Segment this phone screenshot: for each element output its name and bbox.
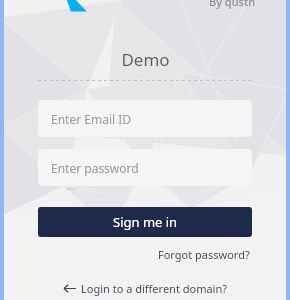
staticText: Enter password [51, 160, 139, 176]
button[interactable]: Sign me in [38, 207, 252, 237]
staticText: Demo [121, 48, 170, 71]
staticText: Enter Email ID [51, 111, 132, 127]
staticText: Sign me in [113, 213, 178, 231]
other: Back [63, 284, 76, 293]
staticText: By qustn [209, 0, 256, 9]
button[interactable]: Forgot password? [156, 245, 252, 264]
button[interactable]: Back [59, 278, 232, 299]
staticText: Login to a different domain? [81, 281, 228, 296]
button[interactable]: Enter Email ID [38, 100, 252, 137]
staticText: Forgot password? [158, 247, 250, 262]
button[interactable]: Enter password [38, 149, 252, 186]
